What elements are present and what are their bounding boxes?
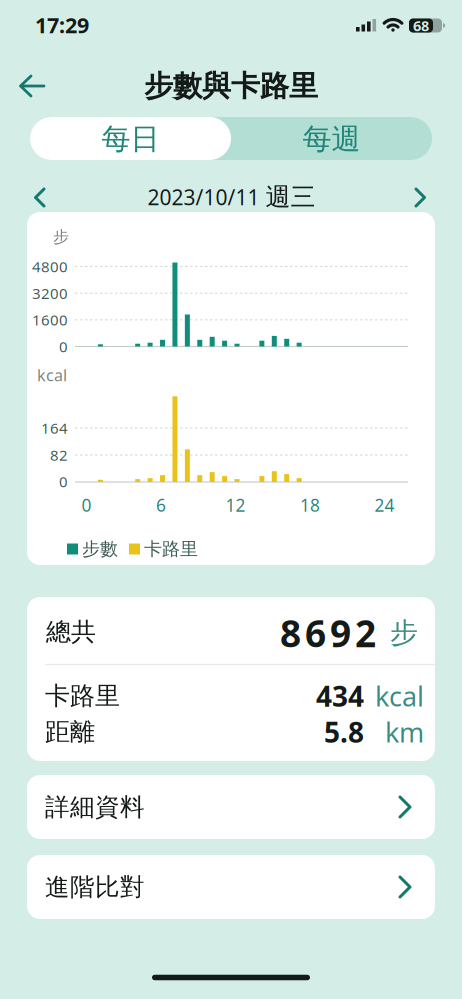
- staticText: 每日: [101, 121, 159, 157]
- staticText: km: [385, 714, 424, 750]
- staticText: 0: [81, 493, 91, 517]
- staticText: 24: [375, 493, 395, 517]
- staticText: 0: [59, 471, 68, 492]
- staticText: 每週: [302, 121, 360, 157]
- staticText: 6: [156, 493, 166, 517]
- staticText: 164: [41, 418, 68, 438]
- staticText: 卡路里: [45, 680, 120, 712]
- staticText: 3200: [32, 283, 68, 303]
- staticText: 1600: [32, 310, 68, 330]
- staticText: 12: [225, 493, 245, 517]
- staticText: 進階比對: [45, 872, 145, 902]
- staticText: 總共: [46, 616, 96, 648]
- staticText: 18: [300, 493, 320, 517]
- staticText: 步數與卡路里: [144, 68, 318, 104]
- staticText: 82: [50, 445, 68, 465]
- staticText: 5.8: [324, 713, 364, 751]
- staticText: 步: [53, 227, 69, 247]
- staticText: 434: [316, 677, 364, 715]
- staticText: 卡路里: [144, 538, 198, 560]
- staticText: kcal: [37, 364, 67, 386]
- staticText: 步: [390, 615, 418, 651]
- staticText: 2023/10/11: [147, 183, 259, 211]
- staticText: 距離: [45, 716, 95, 748]
- staticText: 4800: [32, 256, 68, 277]
- staticText: 0: [59, 336, 68, 357]
- staticText: 週三: [265, 181, 315, 213]
- staticText: 68: [413, 16, 429, 35]
- staticText: kcal: [375, 678, 424, 714]
- staticText: 17:29: [35, 10, 89, 40]
- staticText: 8692: [280, 608, 376, 658]
- staticText: 詳細資料: [45, 792, 145, 822]
- staticText: 步數: [82, 538, 118, 560]
